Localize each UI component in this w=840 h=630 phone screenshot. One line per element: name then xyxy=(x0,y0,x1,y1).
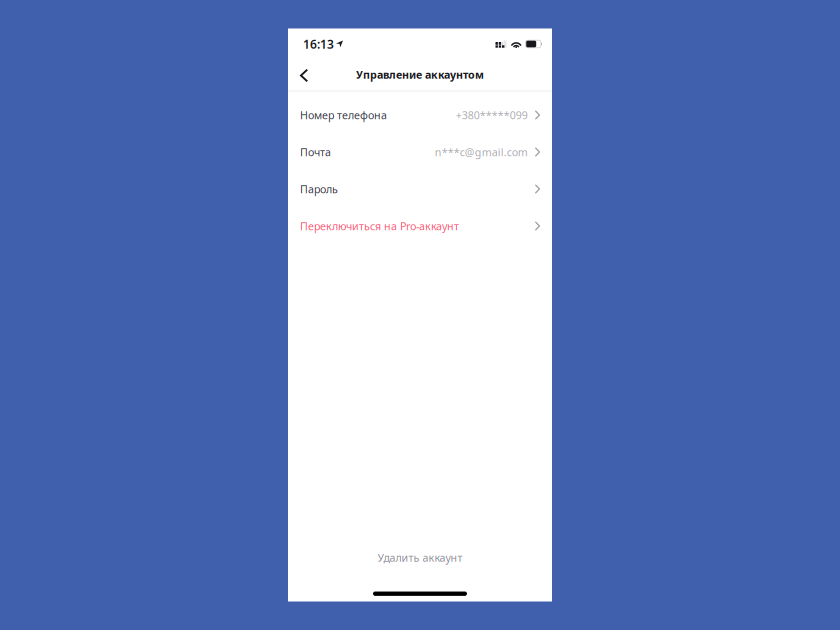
staticText: 16:13 xyxy=(303,36,334,52)
staticText: +380*****099 xyxy=(456,108,528,122)
staticText: Почта xyxy=(300,145,331,159)
staticText: Номер телефона xyxy=(300,108,387,122)
staticText: Управление аккаунтом xyxy=(356,67,484,82)
button[interactable]: Почта xyxy=(288,133,552,170)
button[interactable]: Номер телефона xyxy=(288,96,552,133)
button[interactable]: Back xyxy=(288,60,318,91)
staticText: Переключиться на Pro-аккаунт xyxy=(300,219,459,233)
staticText: n***c@gmail.com xyxy=(435,145,528,159)
staticText: Удалить аккаунт xyxy=(377,550,462,565)
button[interactable]: Пароль xyxy=(288,170,552,207)
staticText: Пароль xyxy=(300,182,338,196)
button[interactable]: Удалить аккаунт xyxy=(359,546,480,568)
button[interactable]: Переключиться на Pro-аккаунт xyxy=(288,207,552,244)
